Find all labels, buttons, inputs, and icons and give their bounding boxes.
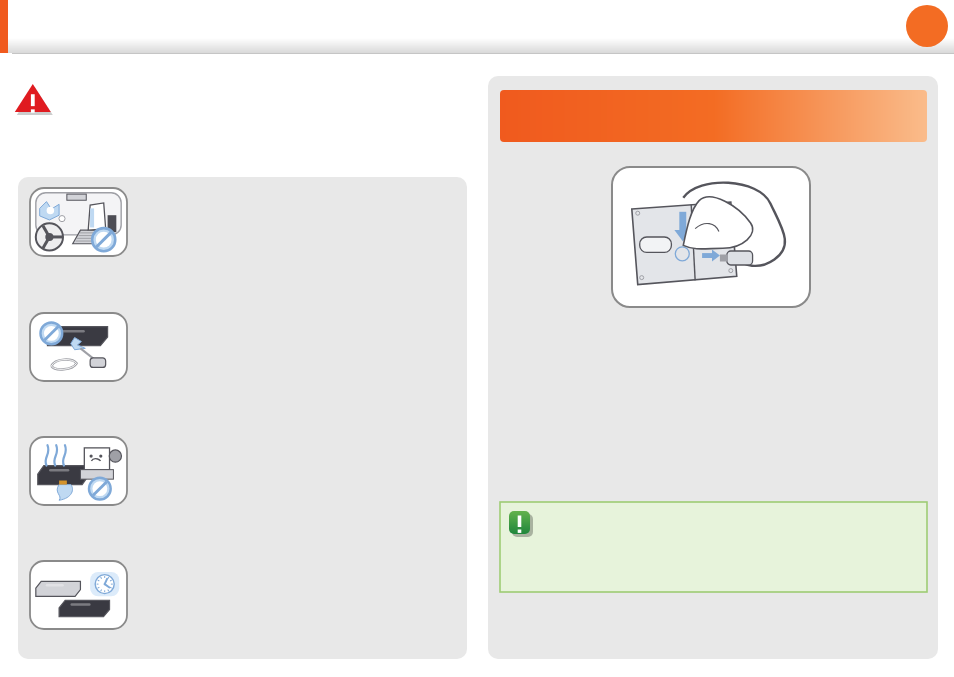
button[interactable] [30, 437, 127, 505]
button[interactable] [488, 76, 938, 659]
other: Warning [14, 82, 54, 118]
button[interactable] [30, 561, 127, 629]
other: Note [509, 511, 533, 537]
button[interactable] [18, 177, 467, 659]
button[interactable] [500, 90, 927, 142]
button[interactable] [30, 313, 127, 381]
button[interactable] [612, 167, 810, 307]
button[interactable]: Note [500, 502, 927, 592]
button[interactable] [30, 188, 127, 256]
